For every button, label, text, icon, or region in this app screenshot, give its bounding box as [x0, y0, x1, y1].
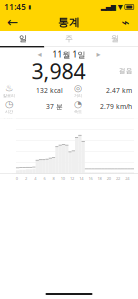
- button[interactable]: Back: [1, 14, 23, 30]
- staticText: 16: [88, 176, 92, 181]
- staticText: 월: [111, 34, 119, 43]
- staticText: 주: [65, 34, 73, 43]
- staticText: 걸음: [119, 67, 133, 75]
- staticText: 4: [34, 176, 36, 181]
- staticText: 2: [25, 176, 27, 181]
- staticText: 8: [53, 176, 55, 181]
- staticText: ◀: [37, 51, 41, 57]
- button[interactable]: Next day: [93, 48, 103, 60]
- staticText: 통계: [58, 16, 80, 29]
- staticText: 속도: [74, 109, 82, 114]
- button[interactable]: Share: [115, 14, 137, 30]
- staticText: 11월 1일: [52, 49, 85, 60]
- staticText: 2.47 km: [106, 86, 132, 95]
- staticText: 3,984: [31, 57, 85, 85]
- staticText: 24: [125, 176, 129, 181]
- button[interactable]: 월: [92, 31, 138, 46]
- staticText: 37 분: [46, 102, 63, 111]
- staticText: ▼: [118, 3, 123, 11]
- staticText: 10: [61, 176, 65, 181]
- staticText: 2.79 km/h: [100, 102, 132, 111]
- staticText: ←: [7, 15, 18, 30]
- staticText: ▶: [96, 51, 100, 57]
- staticText: 거리: [74, 93, 82, 98]
- staticText: 일: [19, 34, 27, 43]
- staticText: 18: [98, 176, 102, 181]
- button[interactable]: Previous day: [34, 48, 44, 60]
- staticText: 2,000: [3, 117, 12, 122]
- staticText: 132 kcal: [36, 86, 63, 95]
- button[interactable]: 일: [0, 31, 46, 46]
- button[interactable]: 주: [46, 31, 92, 46]
- staticText: 0: [16, 176, 18, 181]
- staticText: ◷: [5, 99, 13, 109]
- staticText: ⌁: [122, 15, 130, 30]
- staticText: ▮: [28, 4, 31, 10]
- staticText: 14: [79, 176, 83, 181]
- staticText: ◔: [74, 99, 82, 109]
- staticText: 12: [70, 176, 74, 181]
- staticText: 6: [43, 176, 45, 181]
- staticText: 22: [116, 176, 120, 181]
- staticText: 칼로리: [3, 93, 15, 98]
- staticText: ◎: [74, 83, 82, 93]
- staticText: ▂▄▆: [101, 3, 116, 11]
- staticText: 11:45: [4, 2, 26, 12]
- staticText: 20: [107, 176, 111, 181]
- staticText: 시간: [5, 109, 13, 114]
- staticText: ♨: [5, 83, 13, 93]
